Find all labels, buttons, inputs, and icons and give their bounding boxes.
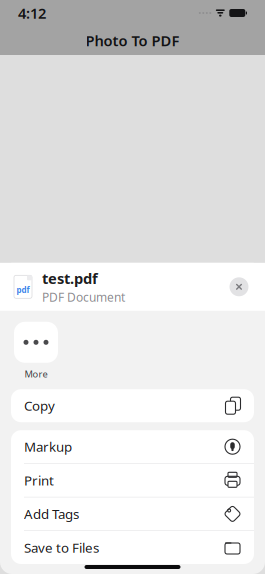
staticText: PDF Document <box>42 289 125 305</box>
button[interactable]: Close <box>226 274 252 300</box>
button[interactable]: Add Tags <box>11 497 254 530</box>
staticText: Copy <box>24 397 55 414</box>
staticText: test.pdf <box>42 269 98 288</box>
staticText: More <box>24 368 47 380</box>
button[interactable]: Markup <box>11 430 254 463</box>
staticText: Save to Files <box>24 539 99 556</box>
staticText: pdf <box>16 284 29 295</box>
staticText: Markup <box>24 438 72 455</box>
staticText: Print <box>24 471 54 489</box>
button[interactable]: Copy <box>11 389 254 422</box>
staticText: Add Tags <box>24 505 79 523</box>
button[interactable]: Print <box>11 464 254 497</box>
button[interactable]: More <box>14 322 58 380</box>
staticText: Photo To PDF <box>85 31 179 50</box>
staticText: 4:12 <box>18 3 46 23</box>
button[interactable]: Save to Files <box>11 531 254 564</box>
